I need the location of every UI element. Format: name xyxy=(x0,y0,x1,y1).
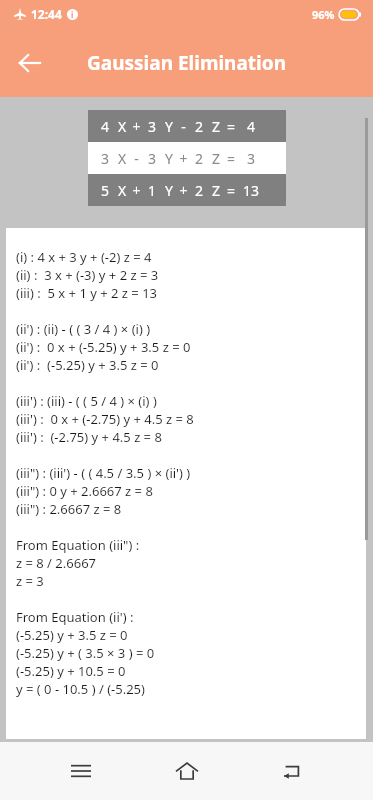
staticText: 5 xyxy=(96,181,114,200)
staticText: (iii") : 0 y + 2.6667 z = 8 xyxy=(16,482,153,500)
staticText: Y xyxy=(161,149,177,168)
button[interactable]: 4 xyxy=(88,110,286,142)
staticText: (ii') : (ii) - ( ( 3 / 4 ) × (i) ) xyxy=(16,320,151,338)
staticText: (ii') : 0 x + (-5.25) y + 3.5 z = 0 xyxy=(16,338,191,356)
button[interactable]: (i) : 4 x + 3 y + (-2) z = 4 xyxy=(6,228,366,739)
staticText: (iii") : 2.6667 z = 8 xyxy=(16,500,122,518)
staticText: (i) : 4 x + 3 y + (-2) z = 4 xyxy=(16,248,152,266)
staticText: = xyxy=(224,117,238,136)
button[interactable]: Back xyxy=(6,39,54,87)
staticText: 3 xyxy=(96,149,114,168)
staticText: = xyxy=(224,149,238,168)
button[interactable]: 5 xyxy=(88,174,286,206)
staticText: 3 xyxy=(238,149,264,168)
staticText: + xyxy=(177,181,190,200)
staticText: Z xyxy=(208,181,224,200)
staticText: + xyxy=(130,117,143,136)
staticText: 1 xyxy=(143,181,161,200)
staticText: (iii") : (iii') - ( ( 4.5 / 3.5 ) × (ii'… xyxy=(16,464,191,482)
staticText: 2 xyxy=(190,149,208,168)
staticText: X xyxy=(114,181,130,200)
staticText: 96% xyxy=(312,7,335,22)
staticText: From Equation (iii") : xyxy=(16,536,140,554)
staticText: 2 xyxy=(190,117,208,136)
staticText: From Equation (ii') : xyxy=(16,608,134,626)
staticText: = xyxy=(224,181,238,200)
staticText: (iii') : (iii) - ( ( 5 / 4 ) × (i) ) xyxy=(16,392,157,410)
staticText: X xyxy=(114,149,130,168)
staticText: Gaussian Elimination xyxy=(87,50,286,76)
staticText: 2 xyxy=(190,181,208,200)
staticText: 4 xyxy=(238,117,264,136)
button[interactable]: Home xyxy=(163,747,211,795)
staticText: (ii) : 3 x + (-3) y + 2 z = 3 xyxy=(16,266,159,284)
staticText: z = 8 / 2.6667 xyxy=(16,554,97,572)
staticText: + xyxy=(130,181,143,200)
staticText: Y xyxy=(161,117,177,136)
staticText: + xyxy=(177,149,190,168)
staticText: - xyxy=(130,149,143,168)
staticText: (ii') : (-5.25) y + 3.5 z = 0 xyxy=(16,356,159,374)
staticText: Z xyxy=(208,117,224,136)
staticText: 3 xyxy=(143,149,161,168)
staticText: i xyxy=(71,9,74,20)
staticText: (iii') : (-2.75) y + 4.5 z = 8 xyxy=(16,428,162,446)
button[interactable]: 3 xyxy=(88,142,286,174)
staticText: z = 3 xyxy=(16,572,44,590)
staticText: (-5.25) y + 3.5 z = 0 xyxy=(16,626,128,644)
staticText: y = ( 0 - 10.5 ) / (-5.25) xyxy=(16,680,145,698)
staticText: (-5.25) y + ( 3.5 × 3 ) = 0 xyxy=(16,644,155,662)
staticText: X xyxy=(114,117,130,136)
staticText: 13 xyxy=(238,181,264,200)
staticText: (iii') : 0 x + (-2.75) y + 4.5 z = 8 xyxy=(16,410,194,428)
staticText: (iii) : 5 x + 1 y + 2 z = 13 xyxy=(16,284,158,302)
button[interactable]: Recent apps xyxy=(57,747,105,795)
staticText: 3 xyxy=(143,117,161,136)
staticText: - xyxy=(177,117,190,136)
staticText: 12:44 xyxy=(31,6,62,22)
staticText: Y xyxy=(161,181,177,200)
staticText: 4 xyxy=(96,117,114,136)
staticText: Z xyxy=(208,149,224,168)
button[interactable]: Back xyxy=(268,747,316,795)
staticText: (-5.25) y + 10.5 = 0 xyxy=(16,662,126,680)
